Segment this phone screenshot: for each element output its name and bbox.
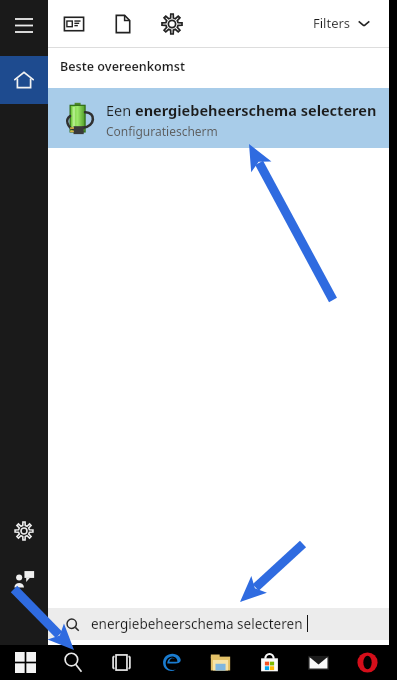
button[interactable]: Settings bbox=[160, 12, 184, 36]
staticText: Configuratiescherm bbox=[106, 123, 218, 139]
button[interactable]: Beste overeenkomst bbox=[60, 58, 186, 75]
button[interactable]: Microsoft Edge bbox=[149, 645, 193, 679]
staticText: Filters bbox=[313, 14, 351, 32]
button[interactable]: Search bbox=[51, 645, 95, 679]
button[interactable]: Task view bbox=[99, 645, 143, 679]
button[interactable]: Start bbox=[3, 645, 47, 679]
button[interactable]: Mail bbox=[296, 645, 340, 679]
staticText: Een bbox=[106, 100, 135, 120]
button[interactable]: Documents bbox=[111, 12, 135, 36]
button[interactable]: Settings bbox=[0, 514, 48, 548]
button[interactable]: Microsoft Store bbox=[247, 645, 291, 679]
button[interactable]: Opera bbox=[345, 645, 389, 679]
button[interactable]: Een bbox=[48, 88, 389, 148]
button[interactable]: Feedback bbox=[0, 562, 48, 596]
staticText: energiebeheerschema selecteren bbox=[135, 100, 377, 120]
staticText: Beste overeenkomst bbox=[60, 58, 186, 75]
staticText: energiebeheerschema selecteren bbox=[91, 615, 303, 633]
button[interactable]: News bbox=[62, 12, 86, 36]
button[interactable]: energiebeheerschema selecteren bbox=[48, 608, 389, 640]
button[interactable]: Filters bbox=[313, 14, 371, 32]
button[interactable]: Menu bbox=[0, 8, 48, 42]
button[interactable]: File Explorer bbox=[198, 645, 242, 679]
button[interactable]: Home bbox=[0, 56, 48, 104]
